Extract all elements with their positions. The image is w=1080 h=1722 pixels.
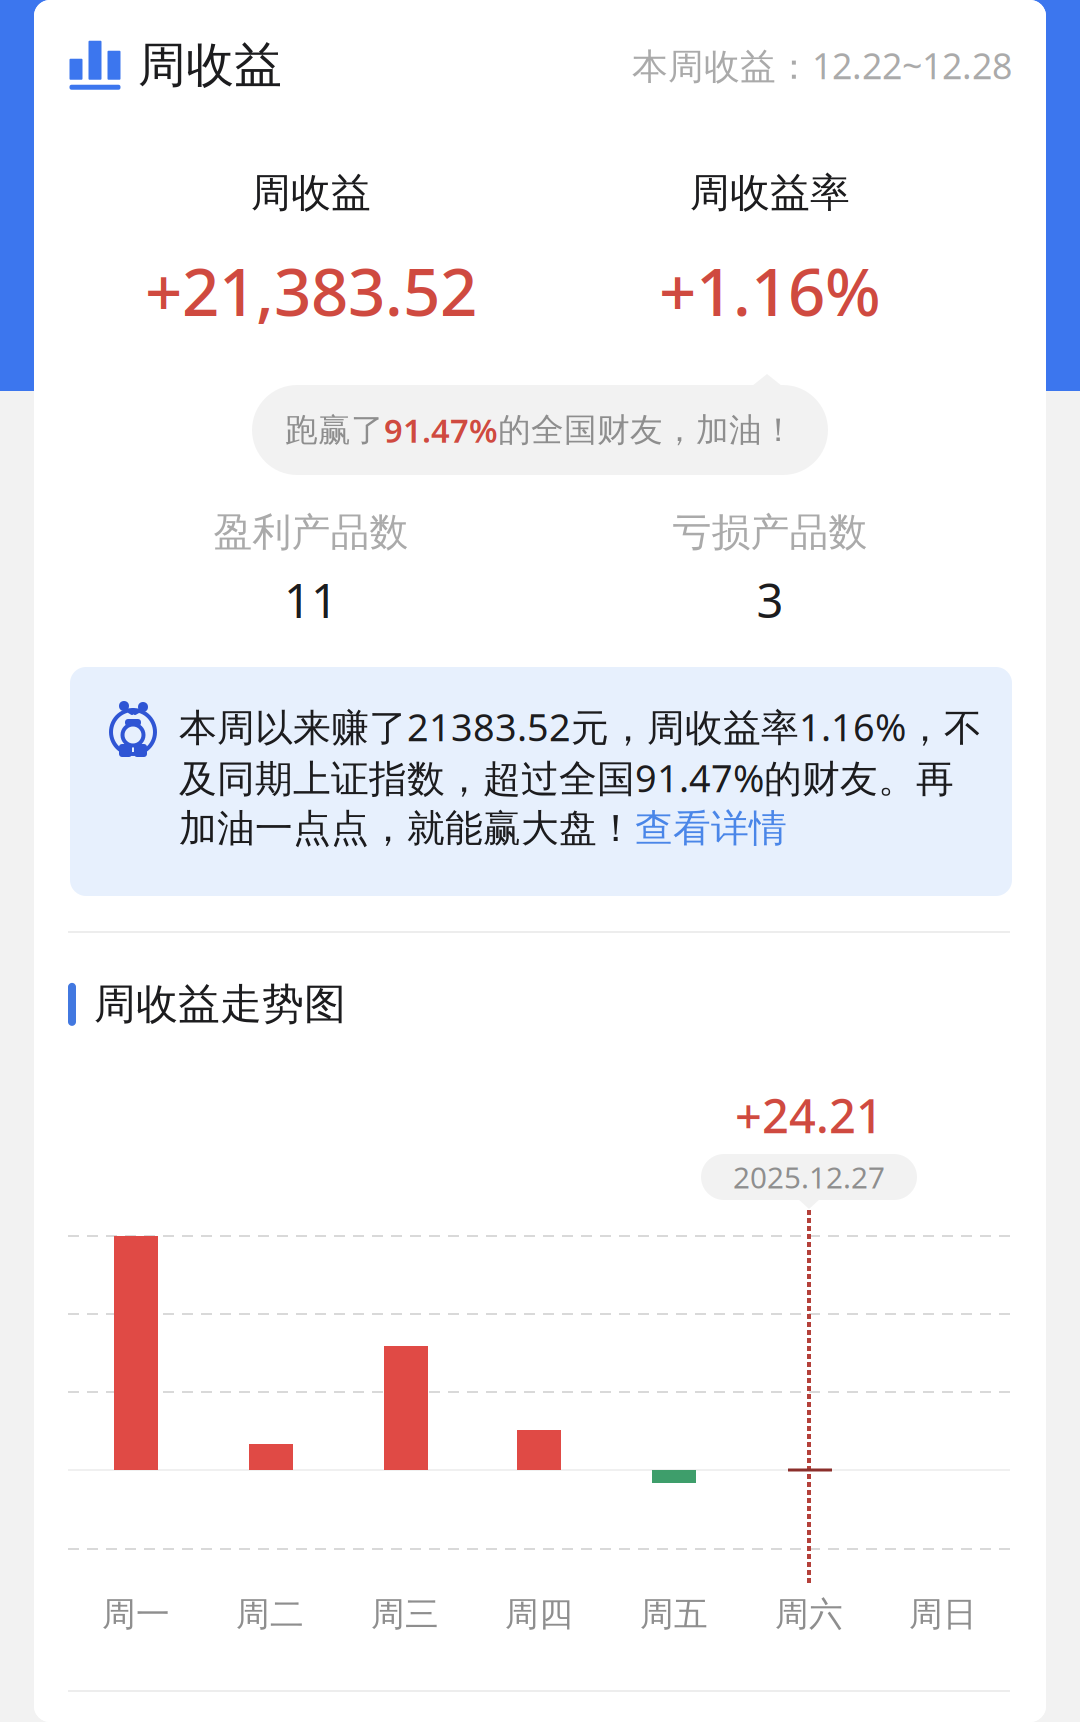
staticText: 周收益 xyxy=(251,168,371,218)
staticText: 跑赢了 xyxy=(285,409,384,451)
staticText: 查看详情 xyxy=(635,805,787,852)
staticText: 周四 xyxy=(505,1593,573,1635)
staticText: 91.47% xyxy=(384,408,498,452)
staticText: 的全国财友，加油！ xyxy=(498,409,795,451)
staticText: 本周收益：12.22~12.28 xyxy=(632,41,1012,90)
staticText: 3 xyxy=(756,568,783,632)
staticText: 周三 xyxy=(371,1593,439,1635)
staticText: 周收益 xyxy=(138,35,282,95)
staticText: +21,383.52 xyxy=(145,246,477,335)
staticText: 周收益率 xyxy=(690,168,850,218)
staticText: 2025.12.27 xyxy=(733,1157,885,1197)
staticText: 周二 xyxy=(236,1593,304,1635)
button[interactable]: 本周以来赚了21383.52元，周收益率1.16%，不 xyxy=(70,667,1012,896)
staticText: 周一 xyxy=(102,1593,170,1635)
staticText: 盈利产品数 xyxy=(213,508,408,557)
staticText: 周日 xyxy=(909,1593,977,1635)
staticText: 加油一点点，就能赢大盘！ xyxy=(179,805,635,852)
staticText: +1.16% xyxy=(659,246,881,335)
staticText: 亏损产品数 xyxy=(672,508,867,557)
staticText: 及同期上证指数，超过全国91.47%的财友。再 xyxy=(179,752,954,803)
button[interactable]: 周收益 xyxy=(70,35,282,95)
staticText: 周五 xyxy=(640,1593,708,1635)
staticText: 周收益走势图 xyxy=(94,978,346,1031)
staticText: 本周以来赚了21383.52元，周收益率1.16%，不 xyxy=(179,701,982,752)
staticText: 周六 xyxy=(775,1593,843,1635)
staticText: 11 xyxy=(284,568,338,632)
staticText: +24.21 xyxy=(735,1083,883,1147)
